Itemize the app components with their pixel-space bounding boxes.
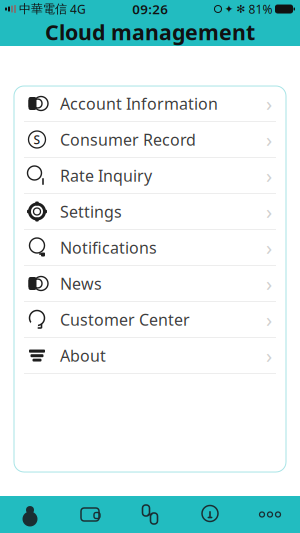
staticText: › bbox=[266, 342, 272, 369]
staticText: › bbox=[266, 306, 272, 333]
staticText: About bbox=[60, 345, 106, 366]
staticText: 中華電信 bbox=[19, 2, 67, 16]
button[interactable]: Settings bbox=[14, 194, 286, 230]
button[interactable]: About bbox=[14, 338, 286, 374]
staticText: › bbox=[266, 234, 272, 261]
staticText: S bbox=[33, 131, 40, 147]
staticText: › bbox=[266, 126, 272, 153]
button[interactable]: More bbox=[240, 496, 300, 533]
staticText: ✻ bbox=[236, 3, 245, 15]
staticText: Notifications bbox=[60, 237, 157, 258]
staticText: Settings bbox=[60, 201, 122, 222]
staticText: Account Information bbox=[60, 93, 218, 114]
staticText: Consumer Record bbox=[60, 129, 196, 150]
staticText: 81% bbox=[248, 1, 272, 17]
staticText: 09:26 bbox=[132, 0, 168, 18]
staticText: Cloud management bbox=[45, 18, 255, 46]
staticText: Customer Center bbox=[60, 309, 190, 330]
button[interactable]: S bbox=[14, 122, 286, 158]
button[interactable]: Call bbox=[120, 496, 180, 533]
button[interactable]: Notifications bbox=[14, 230, 286, 266]
staticText: ✦ bbox=[224, 3, 233, 15]
button[interactable]: Account Information bbox=[14, 86, 286, 122]
staticText: › bbox=[266, 198, 272, 225]
staticText: 4G bbox=[70, 1, 86, 17]
button[interactable]: Cloud bbox=[180, 496, 240, 533]
button[interactable]: Wallet bbox=[60, 496, 120, 533]
staticText: Rate Inquiry bbox=[60, 165, 152, 186]
staticText: › bbox=[266, 90, 272, 117]
button[interactable]: News bbox=[14, 266, 286, 302]
button[interactable]: Profile bbox=[0, 496, 60, 533]
button[interactable]: Customer Center bbox=[14, 302, 286, 338]
button[interactable]: Rate Inquiry bbox=[14, 158, 286, 194]
staticText: › bbox=[266, 270, 272, 297]
staticText: › bbox=[266, 162, 272, 189]
staticText: News bbox=[60, 273, 102, 294]
